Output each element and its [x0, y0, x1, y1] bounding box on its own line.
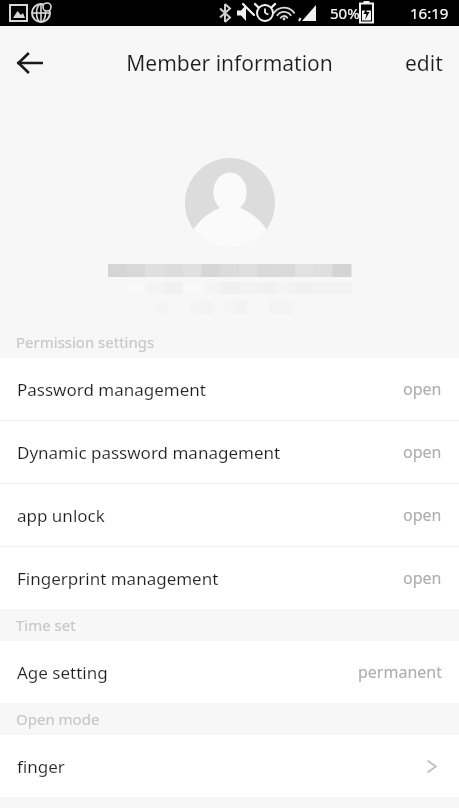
staticText: Time set	[16, 615, 76, 635]
button[interactable]: app unlock	[0, 484, 459, 546]
staticText: Open mode	[16, 709, 100, 729]
staticText: permanent	[358, 661, 442, 683]
button[interactable]: edit	[389, 37, 459, 90]
staticText: edit	[405, 49, 443, 78]
staticText: app unlock	[17, 504, 105, 527]
staticText: open	[403, 441, 442, 463]
staticText: Member information	[126, 49, 333, 78]
staticText: Dynamic password management	[17, 441, 281, 464]
button[interactable]: Fingerprint management	[0, 547, 459, 609]
button[interactable]: Dynamic password management	[0, 421, 459, 483]
staticText: Age setting	[17, 661, 108, 684]
button[interactable]: Back	[4, 37, 56, 89]
staticText: open	[403, 567, 442, 589]
staticText: Permission settings	[16, 332, 155, 352]
staticText: Password management	[17, 378, 206, 401]
button[interactable]: finger	[0, 735, 459, 797]
staticText: 50%	[330, 3, 360, 23]
button[interactable]: Age setting	[0, 641, 459, 703]
staticText: open	[403, 504, 442, 526]
staticText: finger	[17, 755, 65, 778]
button[interactable]: Profile photo	[185, 158, 275, 248]
staticText: open	[403, 378, 442, 400]
button[interactable]: Password management	[0, 358, 459, 420]
staticText: 16:19	[410, 3, 449, 23]
staticText: Fingerprint management	[17, 567, 219, 590]
